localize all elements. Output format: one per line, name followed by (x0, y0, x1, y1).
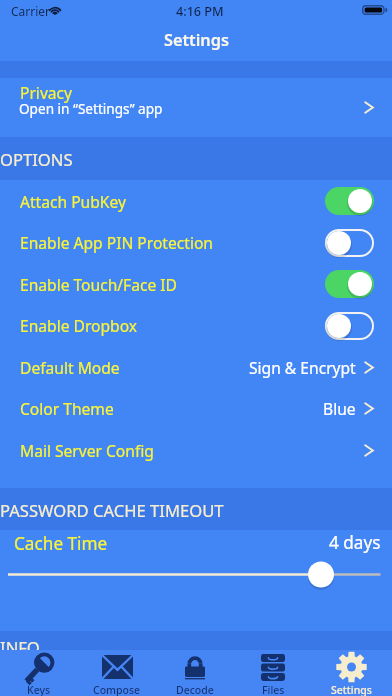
button[interactable]: Switch on (325, 187, 374, 215)
staticText: Open in “Settings” app (19, 99, 163, 118)
button[interactable]: Enable Dropbox (0, 305, 392, 346)
staticText: 4:16 PM (176, 3, 224, 20)
button[interactable]: Switch off (325, 229, 374, 257)
staticText: Enable Dropbox (20, 315, 138, 336)
staticText: Keys (27, 683, 51, 696)
staticText: Enable Touch/Face ID (20, 274, 177, 295)
staticText: Cache Time (14, 532, 108, 555)
button[interactable]: Keys (0, 650, 78, 696)
staticText: Sign & Encrypt (249, 357, 356, 378)
staticText: OPTIONS (0, 148, 73, 171)
staticText: Mail Server Config (20, 440, 154, 461)
staticText: INFO (0, 636, 40, 659)
button[interactable]: Enable Touch/Face ID (0, 263, 392, 305)
button[interactable]: Attach PubKey (0, 180, 392, 222)
staticText: Color Theme (20, 398, 114, 419)
button[interactable]: Compose (78, 650, 156, 696)
button[interactable]: Enable App PIN Protection (0, 222, 392, 263)
staticText: Compose (93, 683, 141, 696)
staticText: Blue (323, 398, 356, 419)
button[interactable]: Files (234, 650, 312, 696)
staticText: Decode (176, 683, 214, 696)
button[interactable]: Switch off (325, 312, 374, 340)
staticText: Privacy (20, 82, 73, 103)
staticText: 4 days (329, 531, 381, 554)
button[interactable]: Mail Server Config (0, 429, 392, 471)
button[interactable]: Settings (312, 650, 390, 696)
button[interactable]: Switch on (325, 270, 374, 298)
staticText: Settings (331, 683, 372, 696)
staticText: Enable App PIN Protection (20, 232, 213, 253)
button[interactable]: Default Mode (0, 346, 392, 388)
staticText: Attach PubKey (20, 191, 126, 212)
button[interactable]: Privacy (0, 78, 392, 137)
staticText: PASSWORD CACHE TIMEOUT (0, 499, 224, 522)
staticText: Carrier (11, 3, 51, 19)
staticText: Files (262, 683, 285, 696)
button[interactable]: Color Theme (0, 388, 392, 429)
button[interactable]: Decode (156, 650, 234, 696)
staticText: Default Mode (20, 357, 120, 378)
staticText: Settings (164, 29, 229, 51)
